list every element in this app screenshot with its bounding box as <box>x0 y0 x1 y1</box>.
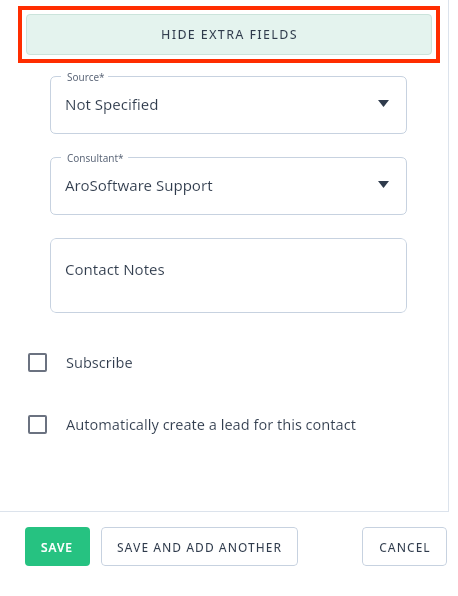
staticText: Source* <box>67 70 105 84</box>
staticText: Subscribe <box>66 352 133 372</box>
button[interactable]: Source* <box>50 76 407 134</box>
button[interactable]: Automatically create a lead for this con… <box>28 407 428 441</box>
staticText: AroSoftware Support <box>65 175 213 195</box>
staticText: Not Specified <box>65 94 159 114</box>
button[interactable]: SAVE <box>25 527 90 566</box>
staticText: Consultant* <box>67 151 124 165</box>
button[interactable]: Consultant* <box>50 157 407 215</box>
staticText: HIDE EXTRA FIELDS <box>161 26 298 43</box>
button[interactable]: CANCEL <box>362 527 447 566</box>
staticText: SAVE <box>41 539 74 555</box>
button[interactable]: HIDE EXTRA FIELDS <box>26 14 432 55</box>
button[interactable]: Contact Notes <box>50 238 407 313</box>
staticText: Contact Notes <box>65 259 165 279</box>
button[interactable]: SAVE AND ADD ANOTHER <box>101 527 298 566</box>
staticText: Automatically create a lead for this con… <box>66 414 356 434</box>
button[interactable]: Subscribe <box>28 345 428 379</box>
staticText: SAVE AND ADD ANOTHER <box>117 539 282 555</box>
staticText: CANCEL <box>379 539 431 555</box>
